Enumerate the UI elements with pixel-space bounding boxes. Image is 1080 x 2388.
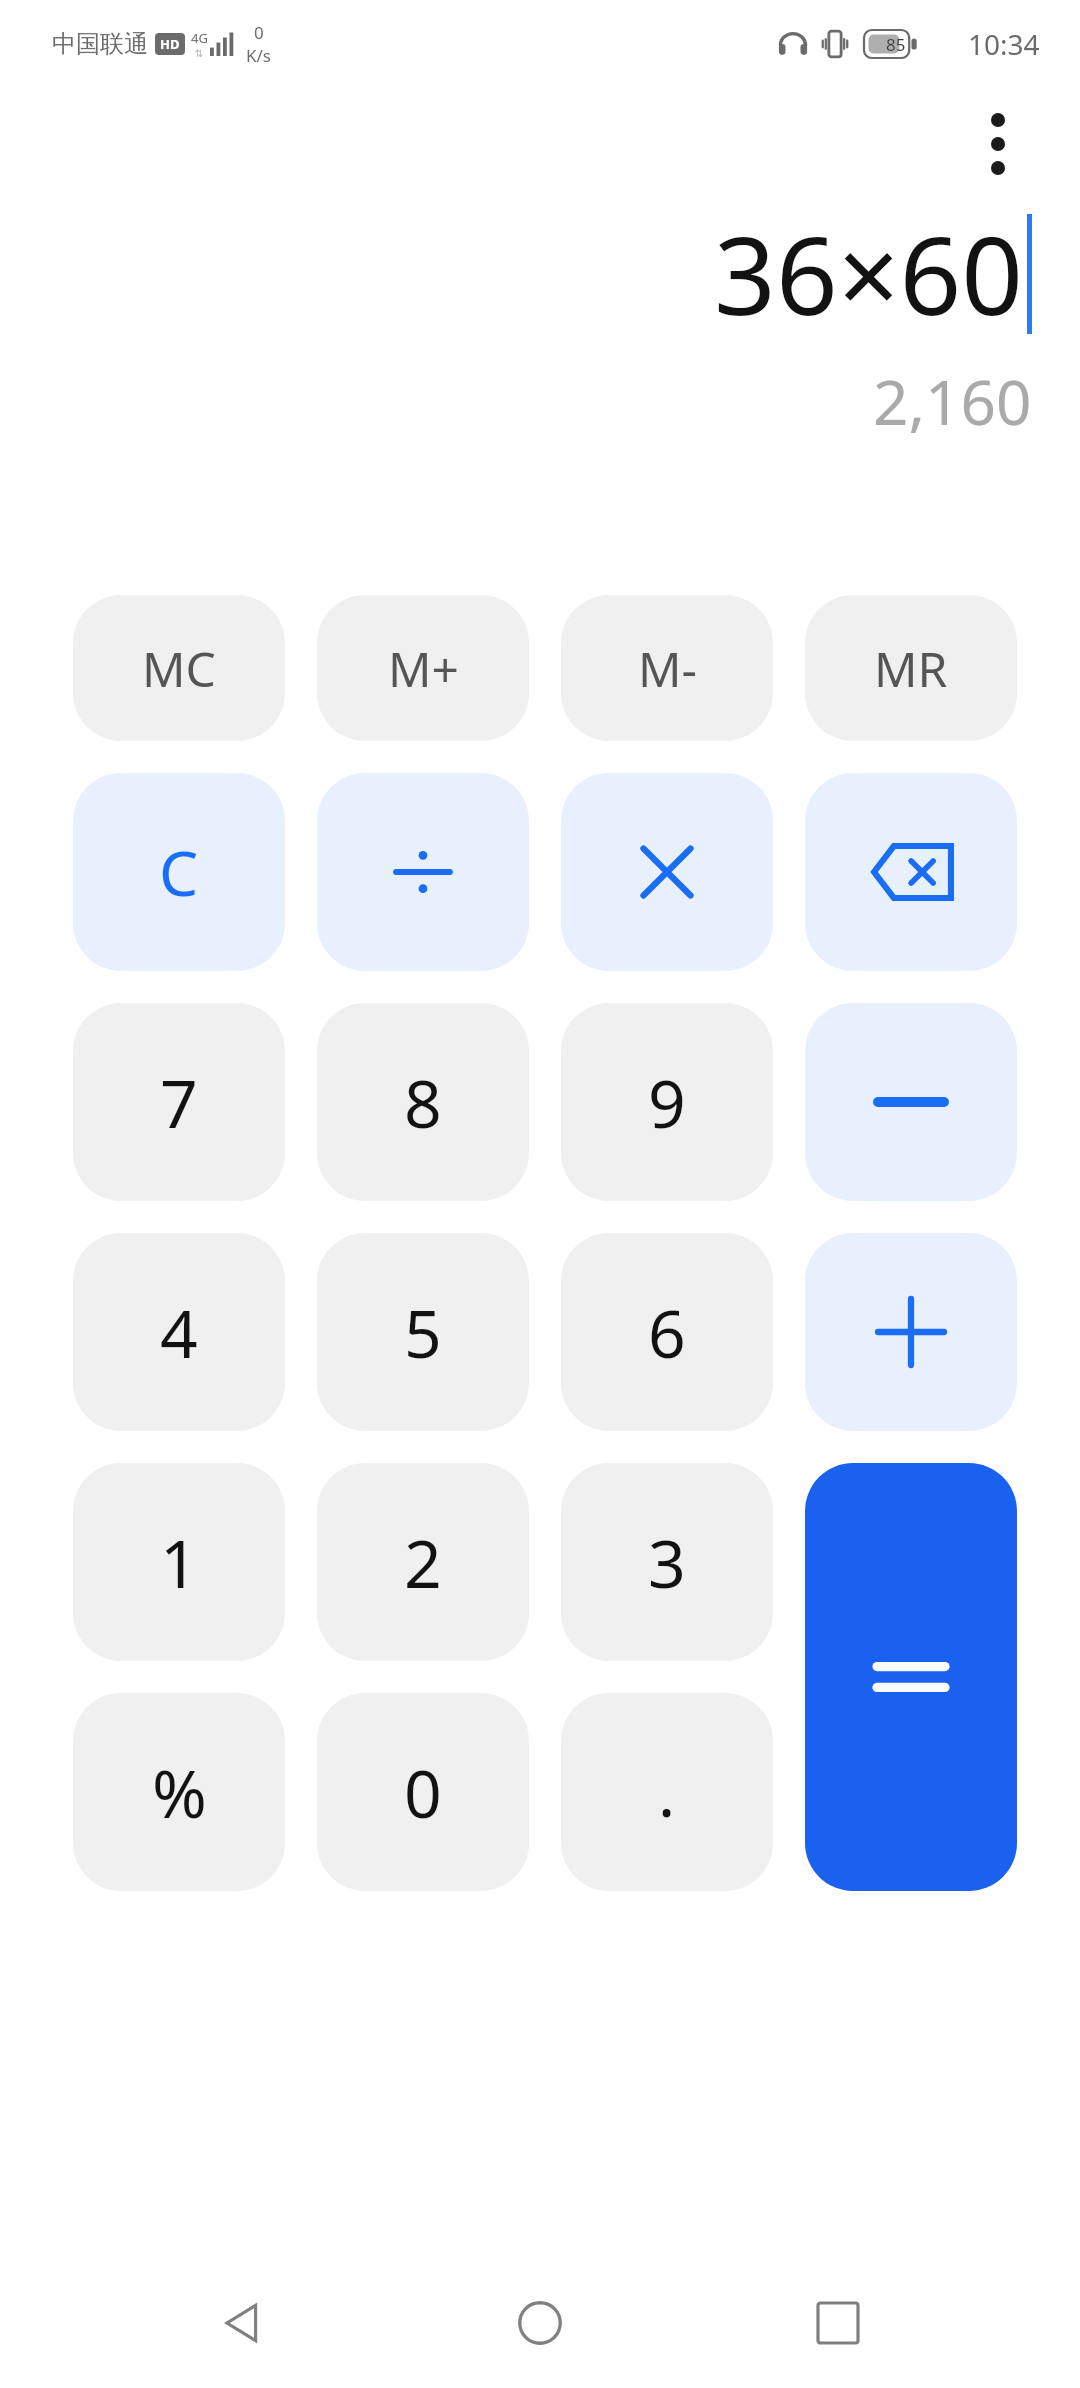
staticText: ⇅	[195, 48, 204, 60]
staticText: 1	[160, 1517, 198, 1607]
button[interactable]: .	[561, 1693, 773, 1891]
staticText: 10:34	[968, 25, 1040, 63]
button[interactable]: 2	[317, 1463, 529, 1661]
button[interactable]: 3	[561, 1463, 773, 1661]
staticText: 0	[404, 1747, 442, 1837]
button[interactable]: Recents	[783, 2268, 893, 2378]
button[interactable]: M+	[317, 595, 529, 741]
staticText: 3	[648, 1517, 686, 1607]
staticText: %	[152, 1747, 207, 1837]
staticText: MR	[874, 636, 948, 701]
staticText: M-	[638, 636, 697, 701]
button[interactable]: Plus	[805, 1233, 1017, 1431]
button[interactable]: C	[73, 773, 285, 971]
staticText: MC	[142, 636, 216, 701]
button[interactable]: MC	[73, 595, 285, 741]
button[interactable]: Home	[485, 2268, 595, 2378]
staticText: 0	[254, 21, 264, 44]
staticText: C	[159, 830, 199, 914]
staticText: M+	[388, 636, 459, 701]
button[interactable]: Minus	[805, 1003, 1017, 1201]
button[interactable]	[561, 773, 773, 971]
button[interactable]: 4	[73, 1233, 285, 1431]
staticText: 4	[160, 1287, 198, 1377]
button[interactable]: 6	[561, 1233, 773, 1431]
staticText: 6	[648, 1287, 686, 1377]
button[interactable]: Back	[188, 2268, 298, 2378]
staticText: .	[658, 1749, 676, 1836]
button[interactable]: 9	[561, 1003, 773, 1201]
button[interactable]: 8	[317, 1003, 529, 1201]
button[interactable]: 0	[317, 1693, 529, 1891]
button[interactable]: 7	[73, 1003, 285, 1201]
button[interactable]: More options	[950, 96, 1046, 192]
staticText: 8	[404, 1057, 442, 1147]
staticText: 9	[648, 1057, 686, 1147]
button[interactable]: MR	[805, 595, 1017, 741]
button[interactable]: %	[73, 1693, 285, 1891]
button[interactable]: M-	[561, 595, 773, 741]
button[interactable]: 5	[317, 1233, 529, 1431]
staticText: 36×60	[714, 200, 1023, 347]
button[interactable]: 1	[73, 1463, 285, 1661]
staticText: 4G	[191, 29, 208, 47]
staticText: 5	[404, 1287, 442, 1377]
staticText: 2,160	[873, 359, 1032, 443]
staticText: HD	[160, 35, 180, 53]
staticText: 2	[404, 1517, 442, 1607]
button[interactable]: Backspace	[805, 773, 1017, 971]
button[interactable]: Equals	[805, 1463, 1017, 1891]
staticText: 85	[886, 33, 906, 56]
staticText: 7	[160, 1057, 198, 1147]
staticText: 中国联通	[52, 29, 148, 59]
staticText: K/s	[246, 44, 271, 67]
button[interactable]	[317, 773, 529, 971]
